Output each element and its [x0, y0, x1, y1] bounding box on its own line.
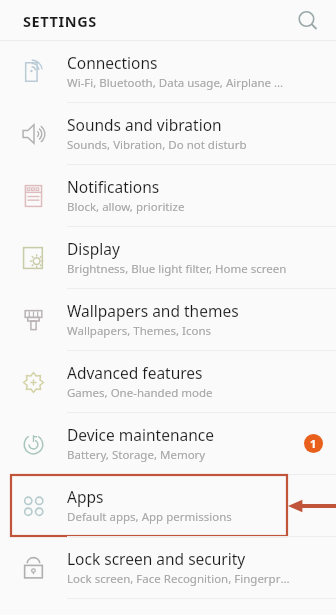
staticText: Connections	[67, 52, 158, 73]
button[interactable]: Device maintenance	[0, 413, 336, 474]
staticText: Block, allow, prioritize	[67, 199, 185, 215]
staticText: Default apps, App permissions	[67, 509, 232, 525]
button[interactable]: Sounds and vibration	[0, 103, 336, 164]
staticText: Brightness, Blue light filter, Home scre…	[67, 261, 287, 277]
button[interactable]: Connections	[0, 41, 336, 102]
staticText: Sounds and vibration	[67, 114, 222, 135]
staticText: Apps	[67, 486, 104, 507]
staticText: 1	[310, 436, 317, 451]
staticText: Battery, Storage, Memory	[67, 447, 206, 463]
staticText: SETTINGS	[23, 11, 97, 31]
staticText: Advanced features	[67, 362, 203, 383]
staticText: Display	[67, 238, 120, 259]
button[interactable]: Wallpapers and themes	[0, 289, 336, 350]
button[interactable]: Advanced features	[0, 351, 336, 412]
button[interactable]: Display	[0, 227, 336, 288]
staticText: Notifications	[67, 176, 160, 197]
staticText: Wi-Fi, Bluetooth, Data usage, Airplane m…	[67, 75, 290, 91]
staticText: Wallpapers and themes	[67, 300, 239, 321]
button[interactable]: Lock screen and security	[0, 537, 336, 598]
staticText: Sounds, Vibration, Do not disturb	[67, 137, 247, 153]
button[interactable]: Apps	[0, 475, 336, 536]
staticText: Device maintenance	[67, 424, 214, 445]
button[interactable]: Notifications	[0, 165, 336, 226]
button[interactable]: Search	[288, 1, 328, 41]
staticText: Lock screen and security	[67, 548, 246, 569]
staticText: Games, One-handed mode	[67, 385, 213, 401]
staticText: Lock screen, Face Recognition, Fingerpri…	[67, 571, 290, 587]
staticText: Wallpapers, Themes, Icons	[67, 323, 212, 339]
